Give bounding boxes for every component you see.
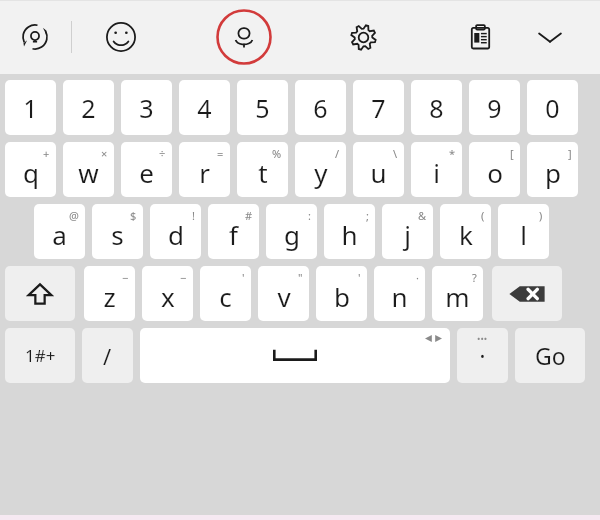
button[interactable]: Slash [82,328,133,383]
staticText: 2 [81,91,96,125]
button[interactable]: 4 [179,80,230,135]
button[interactable]: Settings [340,14,386,60]
button[interactable]: Clipboard [458,15,502,59]
staticText: i [433,155,440,190]
button[interactable]: Hide keyboard [528,15,572,59]
button[interactable]: b [316,266,367,321]
button[interactable]: y [295,142,346,197]
button[interactable]: u [353,142,404,197]
button[interactable]: 6 [295,80,346,135]
staticText: v [277,279,291,314]
button[interactable]: k [440,204,491,259]
staticText: [ [510,146,514,161]
button[interactable]: 9 [469,80,520,135]
staticText: ••• [477,332,488,344]
staticText: @ [69,208,79,223]
staticText: j [404,217,411,252]
button[interactable]: m [432,266,483,321]
button[interactable]: a [34,204,85,259]
staticText: " [298,270,303,285]
staticText: f [229,217,238,252]
button[interactable]: d [150,204,201,259]
staticText: ; [366,208,369,223]
button[interactable]: 8 [411,80,462,135]
button[interactable]: i [411,142,462,197]
staticText: m [445,279,470,314]
staticText: 5 [255,91,270,125]
staticText: 3 [139,91,154,125]
staticText: · [416,270,419,285]
button[interactable]: h [324,204,375,259]
staticText: o [487,155,503,190]
button[interactable]: Backspace [492,266,562,321]
button[interactable]: o [469,142,520,197]
button[interactable]: f [208,204,259,259]
staticText: q [23,155,39,190]
staticText: + [43,146,50,161]
staticText: s [111,217,124,252]
button[interactable]: 3 [121,80,172,135]
button[interactable]: 0 [527,80,578,135]
staticText: 8 [429,91,444,125]
staticText: 1#+ [25,344,56,367]
staticText: g [284,217,300,252]
staticText: $ [130,208,137,223]
staticText: Go [535,340,566,371]
staticText: z [103,279,116,314]
button[interactable]: l [498,204,549,259]
staticText: ] [568,146,572,161]
button[interactable]: n [374,266,425,321]
staticText: ) [539,208,543,223]
button[interactable]: x [142,266,193,321]
button[interactable]: 5 [237,80,288,135]
button[interactable]: 2 [63,80,114,135]
staticText: 7 [371,91,386,125]
button[interactable]: 1 [5,80,56,135]
button[interactable]: Go [515,328,585,383]
button[interactable]: Refresh suggestions [13,15,57,59]
button[interactable]: s [92,204,143,259]
button[interactable]: 7 [353,80,404,135]
button[interactable]: j [382,204,433,259]
staticText: r [199,155,210,190]
staticText: y [314,155,328,190]
button[interactable]: e [121,142,172,197]
staticText: = [217,146,224,161]
button[interactable]: q [5,142,56,197]
staticText: \ [393,146,398,161]
button[interactable]: Period [457,328,508,383]
button[interactable]: c [200,266,251,321]
staticText: # [245,208,253,223]
button[interactable]: z [84,266,135,321]
staticText: ? [472,270,477,285]
button[interactable]: Symbols [5,328,75,383]
staticText: 0 [545,91,560,125]
staticText: − [180,270,187,285]
staticText: ( [481,208,485,223]
button[interactable]: t [237,142,288,197]
button[interactable]: Emoji [98,14,144,60]
button[interactable]: p [527,142,578,197]
staticText: ' [358,270,361,285]
button[interactable]: Space [140,328,450,383]
staticText: w [78,155,99,190]
button[interactable]: Shift [5,266,75,321]
staticText: k [459,217,473,252]
staticText: d [168,217,184,252]
staticText: ! [192,208,195,223]
button[interactable]: Voice input [216,9,272,65]
staticText: ' [242,270,245,285]
staticText: p [545,155,561,190]
staticText: l [520,217,527,252]
staticText: 1 [23,91,38,125]
staticText: x [161,279,175,314]
staticText: 6 [313,91,328,125]
staticText: / [335,146,340,161]
button[interactable]: w [63,142,114,197]
staticText: n [391,279,408,314]
button[interactable]: g [266,204,317,259]
button[interactable]: r [179,142,230,197]
staticText: a [52,217,67,252]
button[interactable]: v [258,266,309,321]
staticText: − [122,270,129,285]
